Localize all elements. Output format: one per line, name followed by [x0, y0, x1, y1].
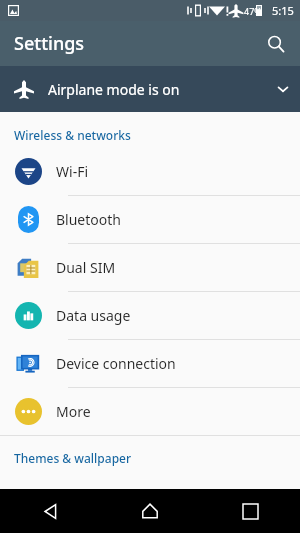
button[interactable]: Recent apps	[200, 489, 300, 533]
button[interactable]: Airplane mode is on	[0, 66, 300, 112]
button[interactable]: Bluetooth	[0, 196, 300, 243]
staticText: Dual SIM	[56, 258, 116, 277]
button[interactable]: Dual SIM	[0, 244, 300, 291]
staticText: Bluetooth	[56, 210, 121, 229]
button[interactable]: More	[0, 388, 300, 435]
button[interactable]: Data usage	[0, 292, 300, 339]
staticText: Themes & wallpaper	[14, 450, 132, 466]
staticText: 5:15	[272, 3, 294, 18]
staticText: 47%	[244, 5, 262, 17]
staticText: Data usage	[56, 306, 131, 325]
button[interactable]: Search	[260, 28, 292, 60]
button[interactable]: Home	[100, 489, 200, 533]
button[interactable]: Wi-Fi	[0, 148, 300, 195]
staticText: Wireless & networks	[14, 127, 131, 143]
staticText: Device connection	[56, 354, 176, 373]
staticText: Airplane mode is on	[48, 80, 266, 99]
staticText: More	[56, 402, 91, 421]
staticText: Settings	[14, 31, 85, 56]
button[interactable]: Device connection	[0, 340, 300, 387]
staticText: Wi-Fi	[56, 162, 89, 181]
button[interactable]: Back	[0, 489, 100, 533]
